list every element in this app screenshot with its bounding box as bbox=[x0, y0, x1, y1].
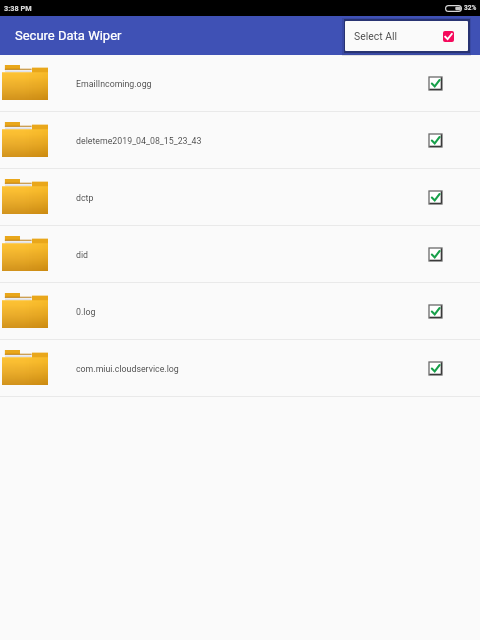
button[interactable]: dctp bbox=[0, 169, 480, 225]
button[interactable]: Select EmailIncoming.ogg bbox=[429, 77, 442, 90]
button[interactable]: deleteme2019_04_08_15_23_43 bbox=[0, 112, 480, 168]
button[interactable]: did bbox=[0, 226, 480, 282]
button[interactable]: com.miui.cloudservice.log bbox=[0, 340, 480, 396]
staticText: 32% bbox=[464, 4, 477, 12]
button[interactable]: Select 0.log bbox=[429, 305, 442, 318]
button[interactable]: Select deleteme2019_04_08_15_23_43 bbox=[429, 134, 442, 147]
staticText: did bbox=[76, 250, 89, 260]
staticText: com.miui.cloudservice.log bbox=[76, 364, 179, 374]
staticText: 0.log bbox=[76, 307, 96, 317]
staticText: dctp bbox=[76, 193, 94, 203]
button[interactable]: 0.log bbox=[0, 283, 480, 339]
button[interactable]: Select dctp bbox=[429, 191, 442, 204]
button[interactable]: Select All bbox=[345, 21, 468, 51]
staticText: deleteme2019_04_08_15_23_43 bbox=[76, 136, 202, 146]
staticText: 3:38 PM bbox=[4, 4, 32, 13]
button[interactable]: EmailIncoming.ogg bbox=[0, 55, 480, 111]
staticText: EmailIncoming.ogg bbox=[76, 79, 152, 89]
button[interactable]: Select all files bbox=[443, 31, 454, 42]
staticText: Select All bbox=[354, 30, 397, 42]
staticText: Secure Data Wiper bbox=[15, 28, 122, 43]
button[interactable]: Select did bbox=[429, 248, 442, 261]
button[interactable]: Select com.miui.cloudservice.log bbox=[429, 362, 442, 375]
